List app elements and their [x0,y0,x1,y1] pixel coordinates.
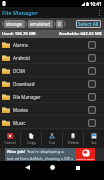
button[interactable]: Select All [78,20,99,28]
button[interactable]: Set [84,130,104,148]
button[interactable]: Movies [0,103,104,116]
button[interactable]: Cancel [0,130,20,148]
staticText: Cut [49,140,55,145]
staticText: Copy [27,140,36,145]
button[interactable]: emulated [30,20,51,28]
button[interactable]: More options [95,7,104,18]
staticText: Android [13,55,30,61]
button[interactable]: Android [0,51,104,64]
button[interactable]: storage [6,20,23,28]
staticText: Available: 642.53 MB [59,31,102,37]
button[interactable]: File Manager [0,7,104,18]
button[interactable]: Music [0,116,104,129]
staticText: File Manager [13,94,41,100]
button[interactable]: File Manager [0,90,104,103]
button[interactable]: 0 [58,20,61,28]
staticText: Select All [78,21,99,27]
staticText: Set [91,140,97,145]
staticText: 10:41 [90,1,102,7]
button[interactable]: Alarms [0,38,104,51]
staticText: Nice job! [7,149,27,155]
button[interactable]: Download [0,77,104,90]
staticText: Delete [68,140,79,145]
button[interactable]: Select Music [88,119,96,127]
button[interactable]: Back [14,161,40,174]
button[interactable]: Select File Manager [88,93,96,101]
button[interactable]: Copy [21,130,41,148]
staticText: 0 [58,21,61,27]
staticText: Used: 136.76 MB [2,31,36,37]
staticText: File Manager [2,9,38,16]
staticText: test ad from AdMob, showing a 320 x 50 [7,156,76,161]
staticText: storage [6,21,23,27]
button[interactable]: Select Download [88,80,96,88]
button[interactable]: Recents [65,161,90,174]
button[interactable]: DCIM [0,64,104,77]
button[interactable]: Home [40,161,65,174]
button[interactable]: Nice job! [5,148,95,161]
staticText: Cancel [4,140,16,145]
staticText: Download [13,81,35,87]
button[interactable]: Select Android [88,54,96,62]
staticText: AdMob by Google [76,158,95,161]
button[interactable]: Select Movies [88,106,96,114]
staticText: Movies [13,107,28,113]
staticText: emulated [30,21,51,27]
button[interactable]: Select DCIM [88,67,96,75]
button[interactable]: Select Alarms [88,41,96,49]
button[interactable]: Cut [42,130,62,148]
button[interactable]: Delete [63,130,83,148]
staticText: Music [13,120,26,126]
staticText: You're displaying a [27,149,64,155]
staticText: Alarms [13,42,28,48]
staticText: DCIM [13,68,25,74]
